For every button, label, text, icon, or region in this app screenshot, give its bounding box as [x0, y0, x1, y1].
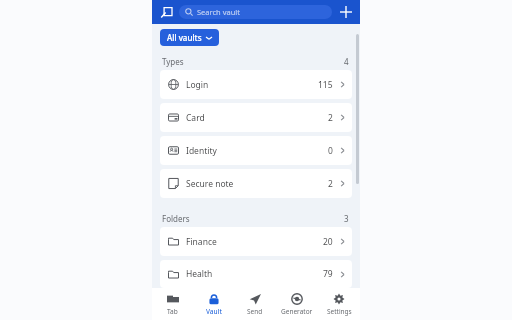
staticText: 20 [323, 236, 333, 248]
staticText: 2 [328, 178, 333, 190]
staticText: Send [247, 307, 263, 316]
staticText: Generator [281, 307, 313, 316]
button[interactable]: Secure note [160, 169, 352, 198]
staticText: 0 [328, 145, 333, 157]
staticText: Vault [206, 307, 222, 316]
button[interactable]: Settings [318, 288, 360, 320]
button[interactable]: Tab [152, 288, 193, 320]
staticText: Tab [167, 307, 178, 316]
staticText: 3 [344, 213, 349, 224]
staticText: Card [186, 112, 205, 124]
staticText: 2 [328, 112, 333, 124]
button[interactable]: Send [234, 288, 276, 320]
button[interactable]: Health [160, 260, 352, 288]
button[interactable]: Vault [193, 288, 234, 320]
button[interactable]: Generator [276, 288, 318, 320]
staticText: Finance [186, 236, 217, 248]
staticText: Settings [327, 307, 352, 316]
staticText: Login [186, 79, 209, 91]
staticText: Health [186, 268, 213, 280]
staticText: Secure note [186, 178, 234, 190]
button[interactable]: Expand [157, 3, 175, 21]
button[interactable]: Card [160, 103, 352, 132]
staticText: Types [162, 56, 184, 67]
button[interactable]: Identity [160, 136, 352, 165]
staticText: Search vault [197, 7, 240, 17]
staticText: 115 [318, 79, 333, 91]
staticText: 79 [323, 268, 333, 280]
button[interactable]: Search vault [179, 5, 332, 19]
button[interactable]: Login [160, 70, 352, 99]
button[interactable]: Add [337, 3, 355, 21]
staticText: 4 [344, 56, 349, 67]
button[interactable]: Finance [160, 227, 352, 256]
staticText: Folders [162, 213, 190, 224]
staticText: All vaults [167, 32, 202, 43]
button[interactable]: All vaults [160, 29, 219, 46]
staticText: Identity [186, 145, 217, 157]
